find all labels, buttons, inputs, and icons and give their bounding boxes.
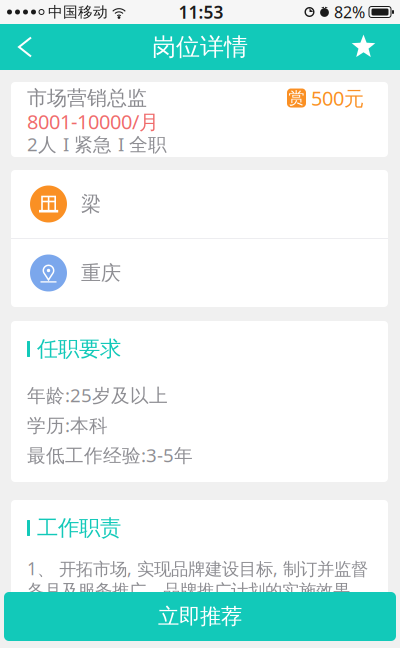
staticText: 学历:本科 — [27, 413, 108, 437]
staticText: 500元 — [306, 85, 364, 111]
staticText: 市场营销总监 — [27, 86, 147, 110]
staticText: 8001-10000/月 — [27, 108, 159, 135]
button[interactable]: Favorite — [337, 24, 400, 70]
button[interactable]: 重庆 — [11, 239, 388, 307]
staticText: 1、 开拓市场, 实现品牌建设目标, 制订并监督各月及服务推广、品牌推广计划的实… — [27, 557, 368, 601]
staticText: 最低工作经验:3-5年 — [27, 443, 193, 467]
staticText: 立即推荐 — [158, 603, 242, 630]
staticText: 赏 — [288, 88, 304, 108]
staticText: 2人 I 紧急 I 全职 — [27, 132, 167, 156]
staticText: 11:53 — [178, 0, 223, 23]
button[interactable]: Back — [0, 24, 48, 70]
staticText: 82% — [330, 1, 369, 23]
button[interactable]: 梁 — [11, 170, 388, 238]
staticText: 梁 — [81, 192, 101, 216]
staticText: 任职要求 — [37, 336, 121, 362]
button[interactable]: 立即推荐 — [4, 592, 396, 641]
staticText: 中国移动 — [44, 3, 112, 21]
staticText: 年龄:25岁及以上 — [27, 383, 168, 407]
staticText: 重庆 — [81, 261, 121, 285]
staticText: 岗位详情 — [152, 32, 248, 62]
staticText: 工作职责 — [37, 515, 121, 541]
